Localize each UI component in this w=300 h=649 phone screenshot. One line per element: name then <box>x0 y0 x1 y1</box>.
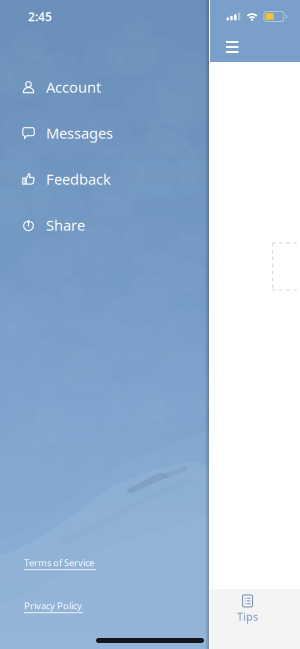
button[interactable]: Tips <box>210 592 285 626</box>
staticText: Terms of Service <box>24 556 94 569</box>
staticText: Privacy Policy <box>24 599 82 612</box>
staticText: Messages <box>46 123 113 143</box>
staticText: Share <box>46 215 85 235</box>
staticText: Feedback <box>46 169 111 189</box>
button[interactable]: Account <box>0 64 209 110</box>
button[interactable]: Privacy Policy <box>0 597 209 615</box>
button[interactable]: Menu <box>218 33 246 61</box>
button[interactable]: Share <box>0 202 209 248</box>
button[interactable]: Terms of Service <box>0 554 209 572</box>
button[interactable]: Feedback <box>0 156 209 202</box>
button[interactable]: Messages <box>0 110 209 156</box>
staticText: Tips <box>237 609 258 624</box>
staticText: Account <box>46 77 101 97</box>
staticText: 2:45 <box>28 8 52 24</box>
